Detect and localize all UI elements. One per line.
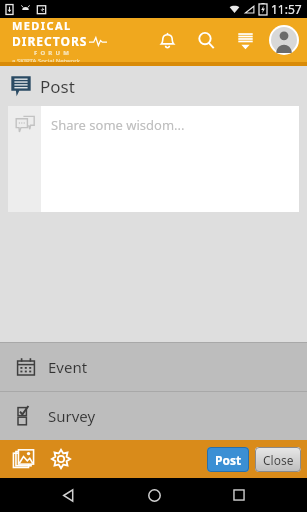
staticText: MEDICAL [12, 18, 72, 33]
button[interactable]: Share some wisdom... [41, 106, 299, 212]
staticText: Share some wisdom... [51, 116, 185, 134]
staticText: Event [48, 357, 88, 377]
staticText: 11:57 [271, 1, 302, 17]
staticText: a SKIPTA Social Network [12, 57, 80, 62]
button[interactable]: Settings [46, 444, 76, 474]
staticText: Close [263, 452, 294, 468]
button[interactable]: Notifications [152, 25, 182, 55]
staticText: Post [215, 452, 242, 468]
button[interactable]: Survey [0, 392, 307, 440]
button[interactable]: Add photo [8, 444, 38, 474]
button[interactable]: Home [137, 478, 171, 512]
button[interactable]: Recent apps [222, 478, 256, 512]
button[interactable]: Close [255, 447, 301, 472]
button[interactable]: Back [51, 478, 85, 512]
button[interactable]: Post [207, 447, 249, 472]
staticText: F O R U M [34, 49, 70, 57]
button[interactable]: Search [191, 25, 221, 55]
staticText: Survey [48, 406, 96, 426]
button[interactable]: Event [0, 343, 307, 391]
button[interactable]: Profile [269, 25, 299, 55]
staticText: Post [40, 75, 75, 98]
staticText: DIRECTORS [12, 33, 88, 49]
button[interactable]: Menu [230, 25, 260, 55]
